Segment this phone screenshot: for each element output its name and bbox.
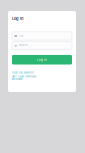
staticText: Log In: [12, 16, 23, 21]
button[interactable]: Didn't receive confirmation instructions…: [12, 76, 41, 80]
staticText: Password: [19, 44, 28, 46]
staticText: Forgot your password?: [12, 71, 34, 74]
staticText: Didn't receive confirmation instructions…: [12, 76, 36, 80]
button[interactable]: Email: [12, 32, 72, 40]
button[interactable]: Password: [12, 41, 72, 49]
staticText: Log In: [37, 58, 47, 61]
button[interactable]: Log In: [12, 55, 72, 64]
staticText: Email: [19, 35, 23, 37]
button[interactable]: Forgot your password?: [12, 71, 72, 74]
